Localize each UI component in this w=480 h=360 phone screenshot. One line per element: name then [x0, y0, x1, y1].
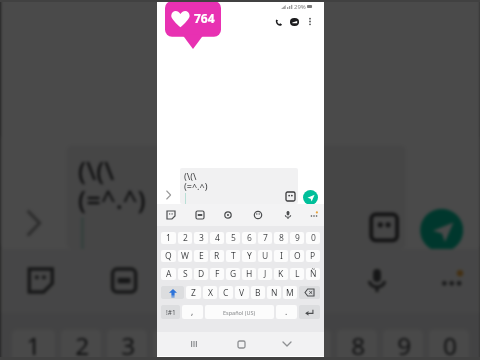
staticText: (=^.^) [78, 180, 147, 214]
button[interactable]: Home [232, 335, 250, 353]
button[interactable]: O [290, 250, 304, 262]
button[interactable]: Symbols [161, 305, 180, 319]
staticText: N [271, 287, 278, 299]
button[interactable]: S [178, 268, 192, 280]
button[interactable]: R [210, 250, 224, 262]
button[interactable]: Voice input [354, 258, 400, 304]
staticText: U [262, 250, 269, 262]
button[interactable]: Stickers [371, 214, 397, 240]
button[interactable]: D [194, 268, 208, 280]
staticText: 9 [397, 329, 411, 360]
button[interactable]: J [258, 268, 272, 280]
button[interactable]: Q [161, 250, 176, 262]
button[interactable]: Y [242, 250, 256, 262]
button[interactable]: Stickers [18, 258, 64, 304]
button[interactable]: 8 [337, 329, 377, 360]
button[interactable]: 6 [245, 329, 285, 360]
button[interactable]: (\(\ [180, 168, 298, 204]
button[interactable]: 7 [291, 329, 331, 360]
button[interactable]: Recents [185, 335, 203, 353]
button[interactable]: 8 [274, 232, 288, 244]
staticText: R [214, 250, 220, 262]
button[interactable]: K [274, 268, 288, 280]
button[interactable]: Back [278, 335, 296, 353]
staticText: I [280, 250, 283, 262]
staticText: 0 [311, 232, 316, 244]
staticText: 3 [121, 329, 136, 360]
button[interactable]: . [276, 305, 297, 319]
button[interactable]: 7 [258, 232, 272, 244]
button[interactable]: Send [420, 209, 463, 252]
button[interactable]: 5 [199, 329, 239, 360]
button[interactable]: Ñ [306, 268, 320, 280]
button[interactable]: Settings [182, 258, 228, 304]
staticText: X [208, 287, 213, 299]
staticText: 8 [279, 232, 284, 244]
button[interactable]: Enter [299, 305, 320, 319]
button[interactable]: Stickers [286, 192, 295, 201]
button[interactable]: 9 [383, 329, 423, 360]
button[interactable]: Z [186, 286, 201, 299]
button[interactable]: 9 [290, 232, 304, 244]
staticText: 4 [215, 232, 220, 244]
button[interactable]: Shift [161, 286, 184, 299]
button[interactable]: Send [303, 190, 318, 205]
button[interactable]: Emoji [250, 207, 266, 223]
button[interactable]: 3 [107, 329, 147, 360]
button[interactable]: V [235, 286, 249, 299]
button[interactable]: N [267, 286, 281, 299]
button[interactable]: More [306, 207, 322, 223]
staticText: 4 [167, 329, 182, 360]
button[interactable]: 1 [161, 232, 176, 244]
button[interactable]: More options [302, 13, 318, 29]
button[interactable]: 5 [226, 232, 240, 244]
button[interactable]: A [161, 268, 176, 280]
button[interactable]: 0 [429, 329, 469, 360]
button[interactable]: GIF [192, 207, 208, 223]
button[interactable]: I [274, 250, 288, 262]
button[interactable]: 4 [210, 232, 224, 244]
button[interactable]: Emoji [268, 258, 314, 304]
button[interactable]: Call [269, 13, 287, 31]
button[interactable]: P [306, 250, 320, 262]
button[interactable]: 4 [153, 329, 193, 360]
button[interactable]: M [283, 286, 297, 299]
button[interactable]: 1 [12, 329, 55, 360]
staticText: 3 [199, 232, 204, 244]
button[interactable]: U [258, 250, 272, 262]
button[interactable]: Voice input [280, 207, 296, 223]
button[interactable]: Backspace [299, 286, 320, 299]
button[interactable]: , [182, 305, 203, 319]
button[interactable]: B [251, 286, 265, 299]
button[interactable]: Stickers [163, 207, 179, 223]
staticText: P [310, 250, 316, 262]
button[interactable]: W [178, 250, 192, 262]
button[interactable]: 0 [306, 232, 320, 244]
button[interactable]: G [226, 268, 240, 280]
button[interactable]: Show more actions [18, 209, 46, 237]
staticText: 5 [213, 329, 228, 360]
button[interactable]: F [210, 268, 224, 280]
button[interactable]: Video call [285, 13, 303, 31]
button[interactable]: 3 [194, 232, 208, 244]
button[interactable]: T [226, 250, 240, 262]
button[interactable]: 6 [242, 232, 256, 244]
button[interactable]: Show more actions [163, 190, 173, 200]
button[interactable]: L [290, 268, 304, 280]
button[interactable]: C [219, 286, 233, 299]
staticText: . [285, 306, 288, 318]
staticText: 6 [247, 232, 252, 244]
button[interactable]: More [429, 258, 475, 304]
button[interactable]: E [194, 250, 208, 262]
staticText: Y [247, 250, 252, 262]
button[interactable]: (\(\ [67, 145, 406, 249]
button[interactable]: 2 [61, 329, 101, 360]
button[interactable]: GIF [101, 258, 147, 304]
staticText: B [255, 287, 261, 299]
staticText: 1 [26, 329, 41, 360]
button[interactable]: Space [205, 305, 274, 319]
button[interactable]: H [242, 268, 256, 280]
button[interactable]: 2 [178, 232, 192, 244]
button[interactable]: X [203, 286, 217, 299]
button[interactable]: Settings [220, 207, 236, 223]
